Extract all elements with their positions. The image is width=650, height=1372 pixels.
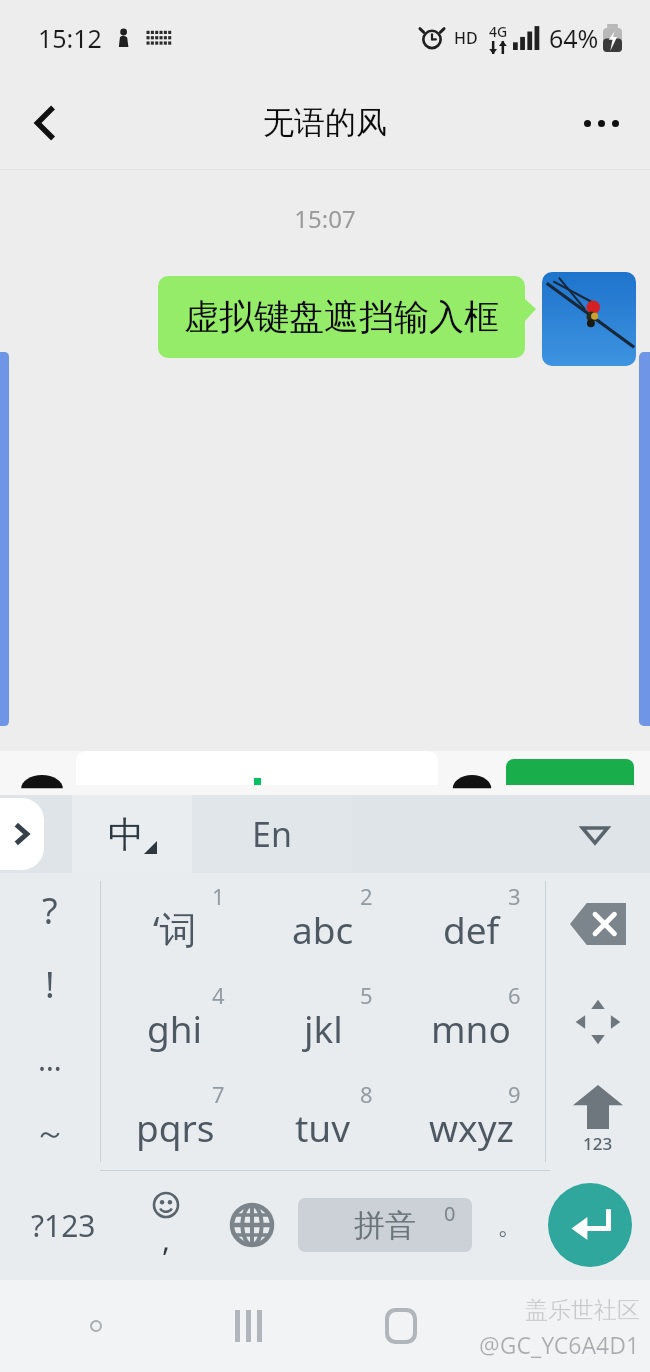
staticText: ～ xyxy=(34,1113,66,1153)
button[interactable]: Move cursor xyxy=(546,974,650,1069)
staticText: pqrs xyxy=(136,1102,215,1152)
staticText: 0 xyxy=(444,1200,456,1227)
button[interactable]: 1 xyxy=(101,873,249,972)
button[interactable]: Expand toolbar xyxy=(0,798,44,870)
button[interactable] xyxy=(506,759,634,785)
button[interactable]: Hide keyboard xyxy=(568,807,622,861)
staticText: abc xyxy=(292,904,354,954)
button[interactable]: 中 xyxy=(72,795,192,873)
button[interactable]: 2 xyxy=(249,873,397,972)
button[interactable]: Emoji and comma xyxy=(126,1170,206,1280)
staticText: wxyz xyxy=(429,1102,514,1152)
staticText: 拼音 xyxy=(354,1206,416,1245)
button[interactable]: Home xyxy=(373,1298,429,1354)
staticText: 5 xyxy=(360,980,373,1010)
button[interactable]: ? xyxy=(0,873,100,947)
staticText: 。 xyxy=(497,1209,523,1242)
button[interactable]: Back xyxy=(14,92,76,154)
staticText: 6 xyxy=(508,980,521,1010)
staticText: 中 xyxy=(108,812,144,857)
button[interactable]: Backspace xyxy=(546,876,650,971)
staticText: HD xyxy=(454,27,478,49)
staticText: 4G xyxy=(489,22,508,41)
button[interactable]: 4 xyxy=(101,972,249,1071)
staticText: … xyxy=(38,1039,62,1080)
button[interactable]: More options xyxy=(570,92,632,154)
staticText: ?123 xyxy=(31,1205,96,1246)
button[interactable]: Switch language xyxy=(206,1170,298,1280)
button[interactable]: 8 xyxy=(249,1071,397,1170)
staticText: 7 xyxy=(212,1079,225,1109)
button[interactable]: Voice input xyxy=(16,763,68,785)
button[interactable]: 9 xyxy=(397,1071,545,1170)
button[interactable]: 5 xyxy=(249,972,397,1071)
staticText: 无语的风 xyxy=(263,103,387,142)
staticText: En xyxy=(252,811,292,857)
button[interactable]: ～ xyxy=(0,1096,100,1170)
staticText: 1 xyxy=(212,881,225,911)
button[interactable]: 3 xyxy=(397,873,545,972)
staticText: 123 xyxy=(583,1132,613,1155)
staticText: 虚拟键盘遮挡输入框 xyxy=(184,295,499,339)
staticText: jkl xyxy=(304,1003,343,1053)
button[interactable]: ?123 xyxy=(0,1170,126,1280)
button[interactable]: Shift to numbers xyxy=(546,1072,650,1167)
button[interactable]: Keyboard indicator xyxy=(74,1304,118,1348)
staticText: 15:07 xyxy=(0,202,650,235)
staticText: 64% xyxy=(549,21,599,55)
staticText: ghi xyxy=(147,1003,203,1053)
staticText: , xyxy=(162,1219,171,1260)
button[interactable]: En xyxy=(192,795,352,873)
button[interactable]: ! xyxy=(0,947,100,1021)
button[interactable]: 。 xyxy=(472,1170,548,1280)
staticText: ? xyxy=(42,886,58,935)
button[interactable]: 虚拟键盘遮挡输入框 xyxy=(158,276,525,358)
staticText: ‘词 xyxy=(153,903,197,954)
button[interactable]: Enter xyxy=(548,1183,632,1267)
button[interactable]: Emoji xyxy=(448,763,496,785)
staticText: 4 xyxy=(212,980,225,1010)
button[interactable]: 拼音 xyxy=(298,1198,472,1252)
staticText: 盖乐世社区 xyxy=(525,1296,640,1325)
staticText: 2 xyxy=(360,881,373,911)
button[interactable]: 6 xyxy=(397,972,545,1071)
staticText: @GC_YC6A4D1 xyxy=(479,1329,640,1360)
button[interactable] xyxy=(76,751,438,785)
staticText: ! xyxy=(45,960,55,1009)
staticText: tuv xyxy=(295,1102,351,1152)
button[interactable]: 7 xyxy=(101,1071,249,1170)
staticText: 8 xyxy=(360,1079,373,1109)
button[interactable]: Recent apps xyxy=(220,1298,276,1354)
staticText: 15:12 xyxy=(38,21,102,55)
staticText: 3 xyxy=(508,881,521,911)
staticText: def xyxy=(443,904,500,954)
button[interactable]: Contact avatar xyxy=(542,272,636,366)
staticText: mno xyxy=(431,1003,511,1053)
button[interactable]: … xyxy=(0,1022,100,1096)
staticText: 9 xyxy=(508,1079,521,1109)
